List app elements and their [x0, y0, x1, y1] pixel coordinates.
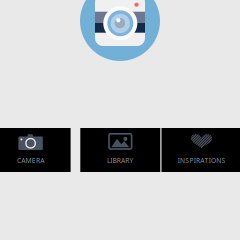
button[interactable]: INSPIRATIONS	[161, 128, 240, 172]
staticText: LIBRARY	[107, 156, 133, 165]
button[interactable]: CAMERA	[0, 128, 71, 172]
button[interactable]: LIBRARY	[80, 128, 160, 172]
staticText: INSPIRATIONS	[178, 156, 225, 165]
staticText: CAMERA	[17, 156, 44, 165]
